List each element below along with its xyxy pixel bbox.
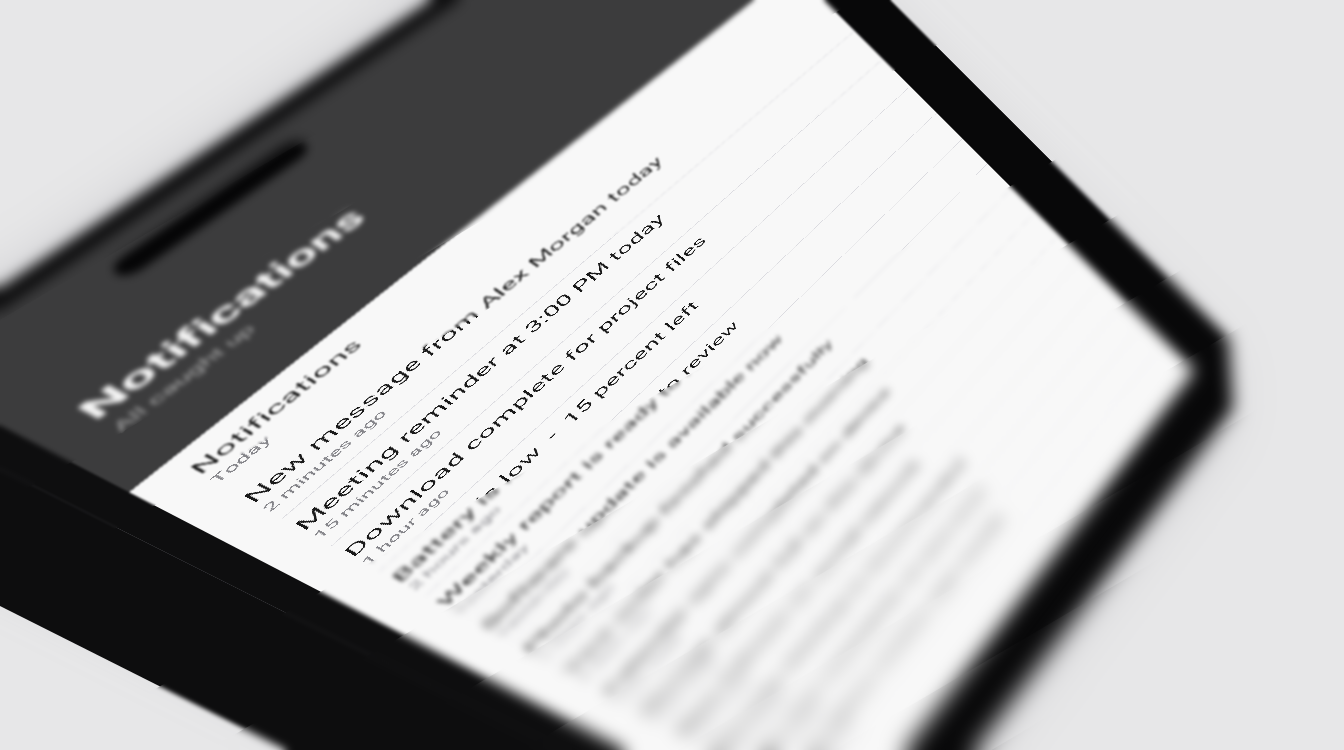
button[interactable]: Notifications app screen on a phone [0,0,1344,750]
